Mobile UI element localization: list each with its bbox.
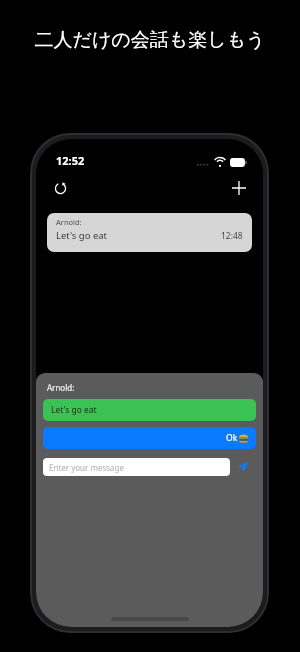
staticText: Enter your message <box>49 462 124 473</box>
button[interactable]: Enter your message <box>43 458 230 476</box>
button[interactable]: Refresh <box>46 174 74 202</box>
staticText: Arnold: <box>47 382 75 393</box>
button[interactable]: Add <box>225 174 253 202</box>
button[interactable]: Ok <box>43 427 256 449</box>
staticText: Arnold: <box>56 217 82 227</box>
staticText: 12:52 <box>56 153 85 168</box>
staticText: Let's go eat <box>51 404 97 416</box>
button[interactable]: Send <box>230 454 256 480</box>
staticText: 二人だけの会話も楽しもう <box>34 28 266 52</box>
staticText: Let's go eat <box>56 229 108 242</box>
button[interactable]: Let's go eat <box>43 399 256 421</box>
staticText: 12:48 <box>221 230 243 242</box>
staticText: Ok <box>226 432 238 444</box>
button[interactable]: Arnold: <box>47 213 252 252</box>
